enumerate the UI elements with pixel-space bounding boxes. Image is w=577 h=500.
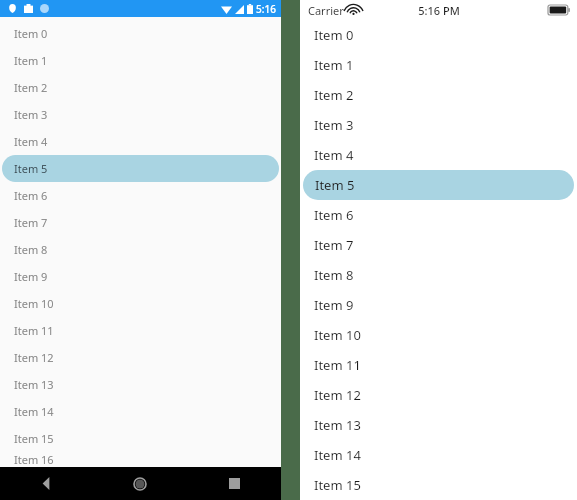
staticText: Item 15 (14, 431, 54, 446)
button[interactable]: Item 9 (300, 290, 577, 320)
staticText: Item 8 (14, 242, 48, 257)
button[interactable]: Item 4 (0, 128, 281, 155)
button[interactable]: Item 9 (0, 263, 281, 290)
staticText: Item 1 (14, 53, 48, 68)
button[interactable]: Item 2 (300, 80, 577, 110)
button[interactable]: Item 15 (0, 425, 281, 452)
button[interactable]: Item 6 (300, 200, 577, 230)
button[interactable]: Item 1 (300, 50, 577, 80)
button[interactable]: Item 11 (300, 350, 577, 380)
staticText: Item 5 (14, 161, 48, 176)
button[interactable]: Item 10 (300, 320, 577, 350)
button[interactable]: Item 14 (300, 440, 577, 470)
staticText: Item 7 (314, 236, 354, 254)
button[interactable]: Item 7 (300, 230, 577, 260)
staticText: Item 0 (314, 26, 354, 44)
button[interactable]: Back (0, 467, 93, 500)
button[interactable]: Item 0 (300, 20, 577, 50)
button[interactable]: Item 0 (0, 20, 281, 47)
button[interactable]: Item 7 (0, 209, 281, 236)
staticText: Item 14 (314, 446, 361, 464)
button[interactable]: Item 6 (0, 182, 281, 209)
button[interactable]: Item 5 (2, 155, 279, 182)
button[interactable]: Item 16 (0, 452, 281, 467)
staticText: Item 15 (314, 476, 361, 494)
staticText: Item 11 (314, 356, 361, 374)
button[interactable]: Item 15 (300, 470, 577, 500)
staticText: Item 4 (314, 146, 354, 164)
button[interactable]: Item 8 (300, 260, 577, 290)
staticText: Item 10 (314, 326, 361, 344)
staticText: Item 16 (14, 452, 54, 467)
button[interactable]: Item 8 (0, 236, 281, 263)
staticText: Item 12 (14, 350, 54, 365)
staticText: Item 1 (314, 56, 354, 74)
staticText: Item 6 (314, 206, 354, 224)
staticText: Item 2 (314, 86, 354, 104)
button[interactable]: Item 5 (303, 170, 574, 200)
button[interactable]: Item 1 (0, 47, 281, 74)
staticText: 5:16 PM (418, 3, 460, 18)
button[interactable]: Recent apps (187, 467, 281, 500)
button[interactable]: Item 12 (0, 344, 281, 371)
button[interactable]: Item 2 (0, 74, 281, 101)
staticText: Item 9 (314, 296, 354, 314)
staticText: Item 7 (14, 215, 48, 230)
staticText: Item 11 (14, 323, 54, 338)
button[interactable]: Home (93, 467, 187, 500)
button[interactable]: Item 4 (300, 140, 577, 170)
staticText: Item 8 (314, 266, 354, 284)
staticText: Item 2 (14, 80, 48, 95)
staticText: Item 12 (314, 386, 361, 404)
staticText: Item 4 (14, 134, 48, 149)
staticText: Carrier (308, 3, 344, 18)
button[interactable]: Item 10 (0, 290, 281, 317)
button[interactable]: Item 14 (0, 398, 281, 425)
button[interactable]: Item 11 (0, 317, 281, 344)
button[interactable]: Item 13 (300, 410, 577, 440)
staticText: Item 3 (14, 107, 48, 122)
button[interactable]: Item 3 (0, 101, 281, 128)
staticText: Item 3 (314, 116, 354, 134)
button[interactable]: Item 3 (300, 110, 577, 140)
button[interactable]: Item 12 (300, 380, 577, 410)
staticText: Item 13 (314, 416, 361, 434)
staticText: Item 13 (14, 377, 54, 392)
staticText: Item 0 (14, 26, 48, 41)
staticText: Item 10 (14, 296, 54, 311)
staticText: Item 6 (14, 188, 48, 203)
button[interactable]: Item 13 (0, 371, 281, 398)
staticText: 5:16 (256, 2, 276, 16)
staticText: Item 9 (14, 269, 48, 284)
staticText: Item 5 (315, 176, 355, 194)
staticText: Item 14 (14, 404, 54, 419)
